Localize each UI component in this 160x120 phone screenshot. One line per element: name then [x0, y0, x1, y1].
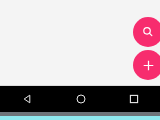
button[interactable]: Back [0, 86, 54, 112]
button[interactable]: Recent apps [107, 86, 160, 112]
button[interactable]: Add [133, 50, 160, 80]
button[interactable]: Home [54, 86, 107, 112]
button[interactable]: Search [133, 17, 160, 47]
